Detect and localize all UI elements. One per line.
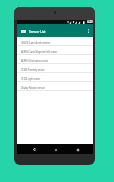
staticText: CT406 Light sensor (21, 77, 73, 81)
button[interactable]: LIS3DH 3-axis Accelerometer (17, 37, 93, 46)
button[interactable]: More options (84, 25, 93, 37)
button[interactable]: Display Rotation sensor (17, 82, 93, 91)
staticText: LIS3DH 3-axis Accelerometer (21, 41, 73, 45)
button[interactable]: Back (28, 145, 40, 154)
button[interactable]: CT406 Proximity sensor (17, 64, 93, 73)
button[interactable]: Home (50, 145, 62, 154)
staticText: Sensor List (29, 30, 46, 34)
button[interactable]: CT406 Light sensor (17, 73, 93, 82)
staticText: AK8963 3-axis Magnetic field sensor (21, 50, 73, 54)
staticText: 4:20 (87, 20, 93, 24)
button[interactable]: Open navigation drawer (18, 25, 28, 37)
button[interactable]: AK8963 Orientation sensor (17, 55, 93, 64)
button[interactable]: Recent apps (72, 145, 84, 154)
staticText: Display Rotation sensor (21, 86, 73, 90)
button[interactable]: AK8963 3-axis Magnetic field sensor (17, 46, 93, 55)
staticText: CT406 Proximity sensor (21, 68, 73, 72)
staticText: AK8963 Orientation sensor (21, 59, 73, 63)
